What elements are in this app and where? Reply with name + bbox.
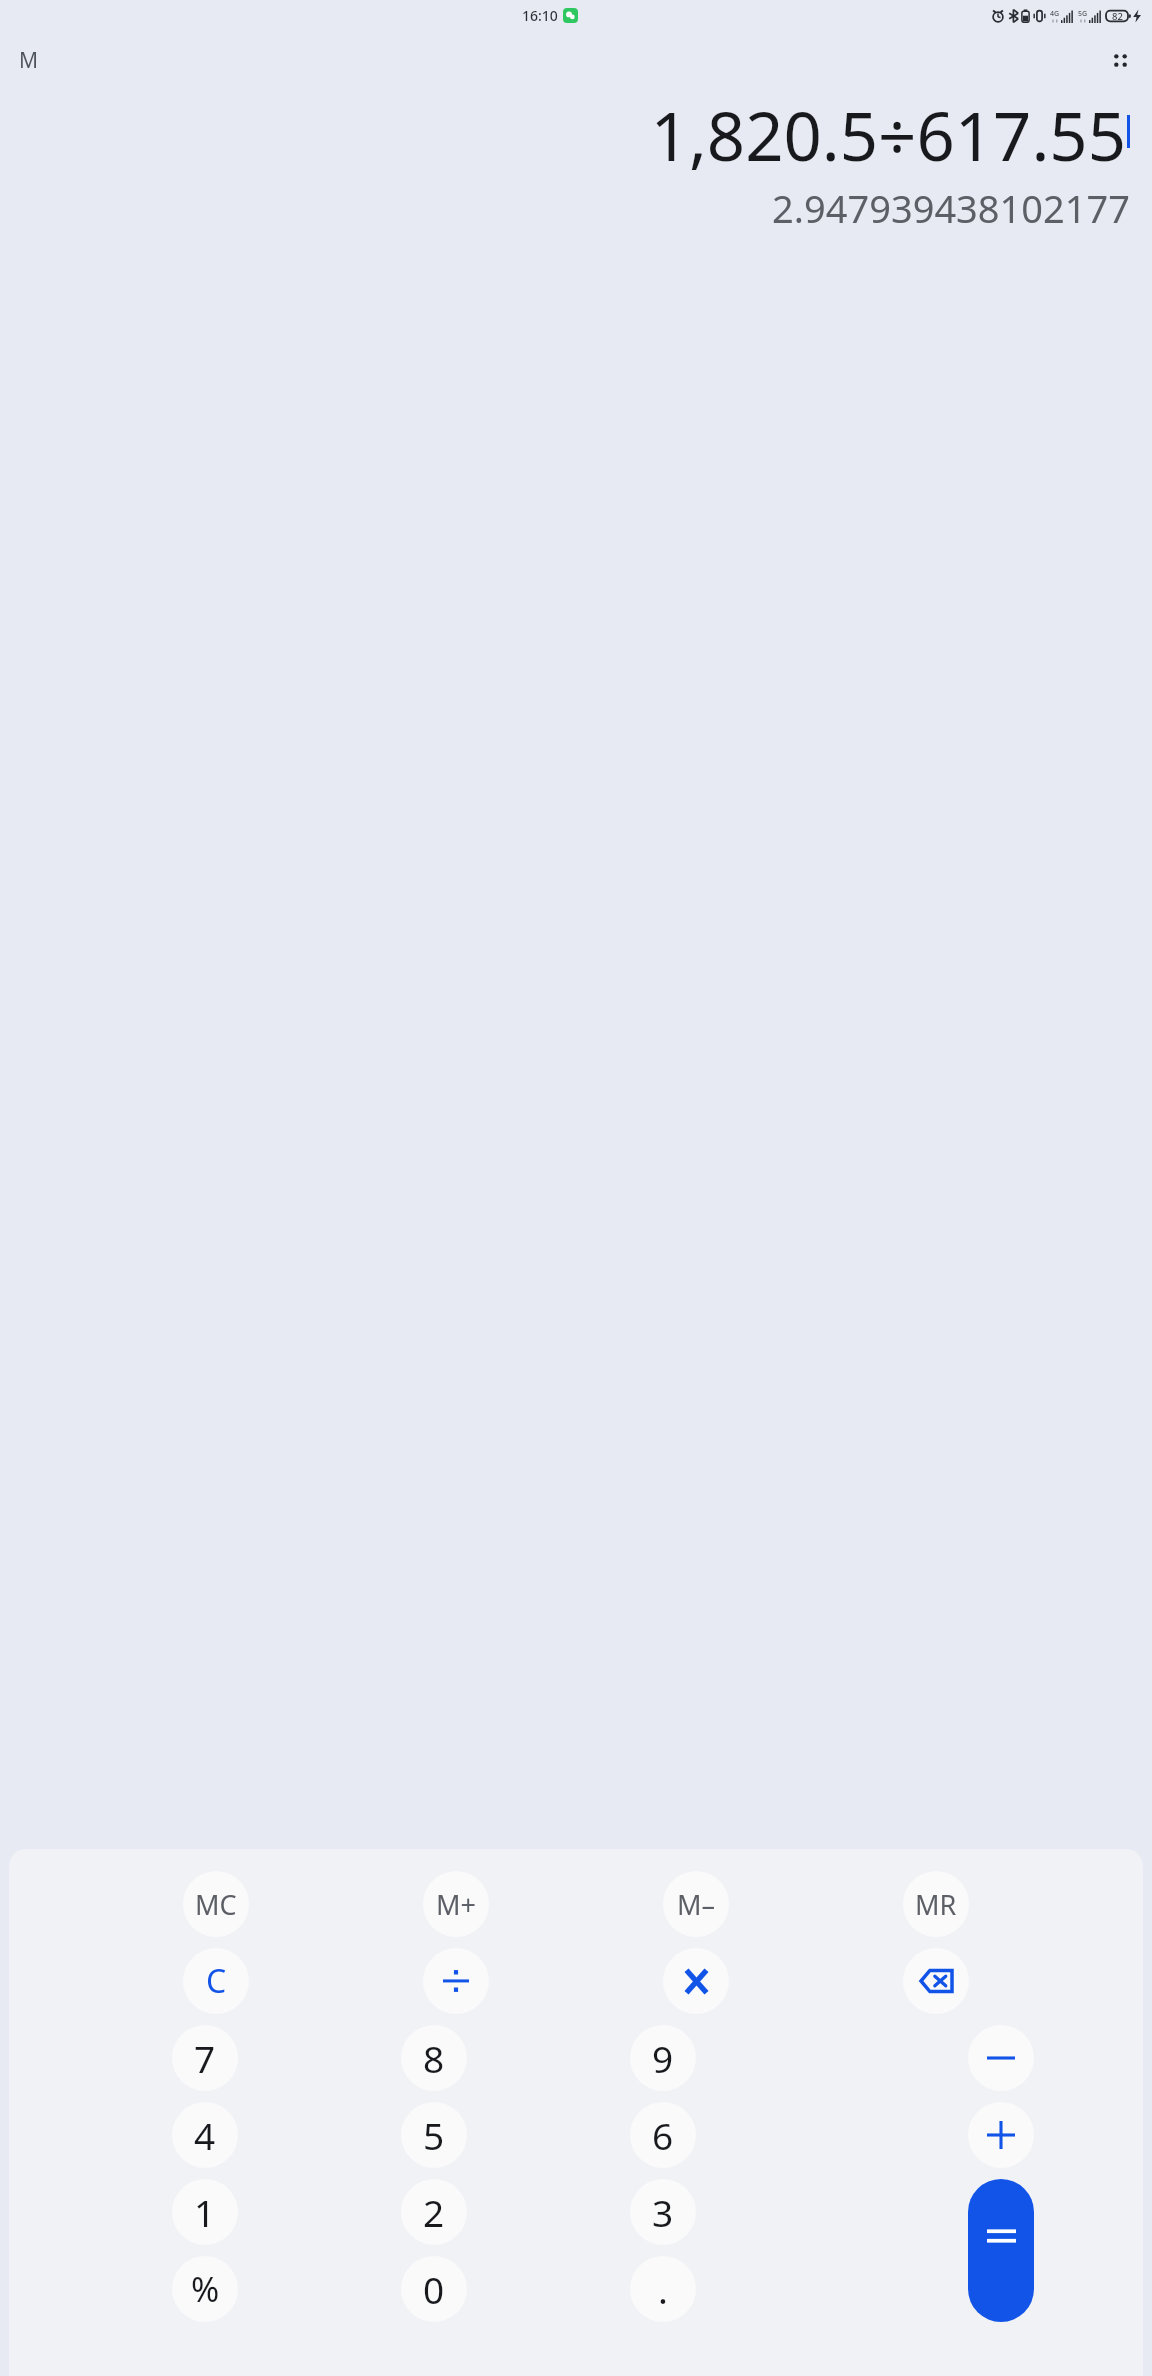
button[interactable]: More options (1098, 38, 1143, 83)
staticText: 6 (652, 2110, 674, 2160)
button[interactable]: 3 (630, 2179, 696, 2245)
staticText: 1 (194, 2187, 216, 2237)
button[interactable]: MR (903, 1871, 969, 1937)
staticText: % (191, 2266, 220, 2312)
staticText: . (658, 2264, 668, 2314)
staticText: 1,820.5÷617.55 (650, 89, 1126, 180)
staticText: 2.947939438102177 (22, 182, 1130, 234)
staticText: M+ (436, 1886, 476, 1923)
button[interactable]: 4 (172, 2102, 238, 2168)
button[interactable]: Minus (968, 2025, 1034, 2091)
button[interactable]: Multiply (663, 1948, 729, 2014)
button[interactable]: 1 (172, 2179, 238, 2245)
button[interactable]: M– (663, 1871, 729, 1937)
button[interactable]: % (172, 2256, 238, 2322)
staticText: 7 (194, 2033, 216, 2083)
button[interactable]: Plus (968, 2102, 1034, 2168)
staticText: M– (677, 1886, 715, 1923)
button[interactable]: 2 (401, 2179, 467, 2245)
button[interactable]: Divide (423, 1948, 489, 2014)
staticText: MR (915, 1886, 957, 1923)
staticText: 0 (423, 2264, 445, 2314)
button[interactable]: 5 (401, 2102, 467, 2168)
staticText: 2 (423, 2187, 445, 2237)
staticText: 5G (1078, 9, 1088, 19)
button[interactable]: 9 (630, 2025, 696, 2091)
button[interactable]: 8 (401, 2025, 467, 2091)
staticText: M (19, 46, 39, 75)
staticText: 9 (652, 2033, 674, 2083)
staticText: 3 (652, 2187, 674, 2237)
button[interactable]: C (183, 1948, 249, 2014)
staticText: MC (195, 1886, 237, 1923)
button[interactable]: 7 (172, 2025, 238, 2091)
button[interactable]: M+ (423, 1871, 489, 1937)
staticText: 8 (423, 2033, 445, 2083)
button[interactable]: Backspace (903, 1948, 969, 2014)
button[interactable]: 6 (630, 2102, 696, 2168)
staticText: C (206, 1959, 227, 2003)
staticText: 4G (1050, 9, 1060, 19)
button[interactable]: M (7, 38, 51, 83)
button[interactable]: . (630, 2256, 696, 2322)
button[interactable]: Equals (968, 2179, 1034, 2322)
button[interactable]: MC (183, 1871, 249, 1937)
staticText: 82 (1112, 10, 1123, 23)
button[interactable]: 0 (401, 2256, 467, 2322)
staticText: 5 (423, 2110, 445, 2160)
staticText: 4 (194, 2110, 216, 2160)
staticText: 16:10 (522, 6, 558, 25)
